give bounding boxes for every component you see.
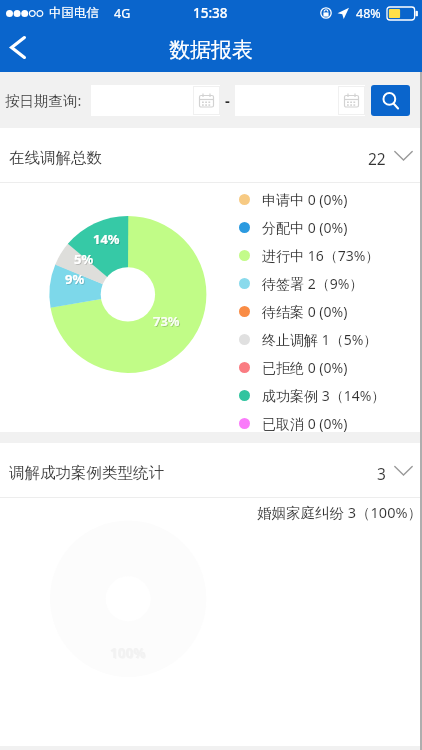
staticText: 14% bbox=[93, 230, 120, 248]
button[interactable]: 终止调解 1（5%） bbox=[239, 325, 378, 353]
staticText: 已取消 0 (0%) bbox=[262, 414, 348, 433]
button[interactable]: 分配中 0 (0%) bbox=[239, 213, 348, 241]
staticText: 9% bbox=[66, 271, 86, 289]
staticText: 中国电信 bbox=[49, 5, 99, 21]
staticText: 73% bbox=[153, 312, 180, 330]
staticText: 5% bbox=[74, 250, 94, 268]
staticText: 终止调解 1（5%） bbox=[262, 330, 378, 349]
button[interactable]: 在线调解总数 bbox=[0, 128, 422, 182]
staticText: 已拒绝 0 (0%) bbox=[262, 358, 348, 377]
staticText: 在线调解总数 bbox=[9, 148, 102, 168]
button[interactable]: 搜索 bbox=[371, 85, 410, 116]
staticText: 分配中 0 (0%) bbox=[262, 218, 348, 237]
staticText: 数据报表 bbox=[169, 37, 253, 63]
staticText: 调解成功案例类型统计 bbox=[9, 463, 164, 483]
staticText: 按日期查询: bbox=[5, 90, 82, 110]
staticText: 48% bbox=[356, 5, 381, 22]
button[interactable] bbox=[91, 85, 220, 116]
staticText: 100% bbox=[111, 645, 147, 663]
staticText: 申请中 0 (0%) bbox=[262, 190, 348, 209]
button[interactable]: 进行中 16（73%） bbox=[239, 241, 380, 269]
button[interactable]: 成功案例 3（14%） bbox=[239, 381, 386, 409]
staticText: 9% bbox=[65, 270, 85, 288]
staticText: 15:38 bbox=[193, 4, 228, 22]
button[interactable] bbox=[235, 85, 365, 116]
staticText: 5% bbox=[75, 251, 95, 269]
staticText: - bbox=[225, 90, 230, 110]
staticText: 婚姻家庭纠纷 3（100%） bbox=[257, 502, 422, 522]
staticText: 成功案例 3（14%） bbox=[262, 386, 386, 405]
staticText: 22 bbox=[368, 148, 386, 169]
staticText: 待签署 2（9%） bbox=[262, 274, 364, 293]
button[interactable]: 待签署 2（9%） bbox=[239, 269, 364, 297]
staticText: 待结案 0 (0%) bbox=[262, 302, 348, 321]
staticText: 进行中 16（73%） bbox=[262, 246, 380, 265]
staticText: 73% bbox=[154, 313, 181, 331]
staticText: 14% bbox=[94, 231, 121, 249]
staticText: 100% bbox=[110, 644, 146, 662]
staticText: 3 bbox=[377, 463, 386, 484]
button[interactable]: 已取消 0 (0%) bbox=[239, 409, 348, 437]
button[interactable]: 申请中 0 (0%) bbox=[239, 185, 348, 213]
button[interactable]: 返回 bbox=[0, 27, 45, 72]
button[interactable]: 调解成功案例类型统计 bbox=[0, 443, 422, 497]
button[interactable]: 待结案 0 (0%) bbox=[239, 297, 348, 325]
button[interactable]: 已拒绝 0 (0%) bbox=[239, 353, 348, 381]
staticText: 4G bbox=[114, 5, 131, 22]
